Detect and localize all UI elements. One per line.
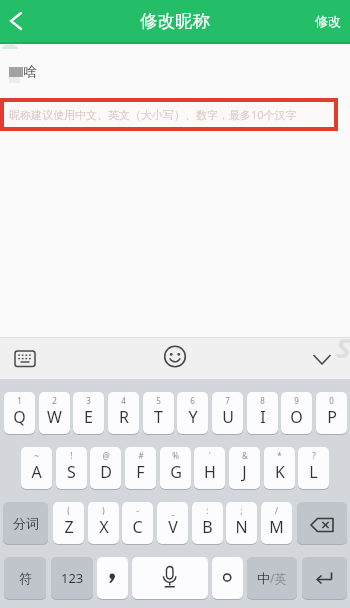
staticText: 分词 xyxy=(13,515,39,531)
staticText: % xyxy=(172,450,179,461)
staticText: P xyxy=(327,406,337,428)
staticText: J xyxy=(242,461,247,483)
staticText: W xyxy=(47,406,62,428)
staticText: 修改 xyxy=(315,13,341,29)
staticText: K xyxy=(275,461,285,483)
staticText: 4 xyxy=(121,395,126,406)
staticText: C xyxy=(132,516,143,538)
staticText: 昵称建议使用中文、英文（大小写）、数字，最多10个汉字 xyxy=(9,107,297,122)
button[interactable]: / xyxy=(261,502,292,544)
staticText: R xyxy=(119,406,129,428)
button[interactable]: _ xyxy=(157,502,188,544)
staticText: Y xyxy=(188,406,198,428)
button[interactable] xyxy=(306,346,338,372)
staticText: # xyxy=(138,450,144,461)
button[interactable]: - xyxy=(122,502,153,544)
button[interactable] xyxy=(2,5,36,37)
button[interactable]: 分词 xyxy=(3,502,48,544)
staticText: V xyxy=(168,516,178,538)
staticText: ; xyxy=(240,505,243,516)
button[interactable] xyxy=(132,557,208,599)
staticText: Z xyxy=(64,516,74,538)
staticText: A xyxy=(31,461,42,483)
staticText: X xyxy=(99,516,109,538)
button[interactable]: ) xyxy=(88,502,119,544)
button[interactable]: 1 xyxy=(4,392,35,434)
staticText: 5 xyxy=(156,395,161,406)
button[interactable]: 7 xyxy=(212,392,243,434)
button[interactable]: # xyxy=(125,447,156,489)
button[interactable]: & xyxy=(229,447,260,489)
button[interactable]: 0 xyxy=(316,392,347,434)
staticText: S xyxy=(67,461,76,483)
button[interactable]: 8 xyxy=(247,392,278,434)
staticText: B xyxy=(202,516,213,538)
staticText: 符 xyxy=(19,570,32,586)
staticText: U xyxy=(222,406,234,428)
staticText: M xyxy=(269,516,284,538)
staticText: * xyxy=(277,450,282,461)
staticText: Q xyxy=(13,406,26,428)
button[interactable]: 5 xyxy=(143,392,174,434)
staticText: 3 xyxy=(86,395,91,406)
button[interactable]: : xyxy=(192,502,223,544)
staticText: O xyxy=(290,406,303,428)
button[interactable]: 中/英 xyxy=(247,557,297,599)
staticText: _ xyxy=(171,505,175,516)
button[interactable] xyxy=(302,557,347,599)
staticText: / xyxy=(275,505,278,516)
button[interactable] xyxy=(8,344,44,372)
staticText: 6 xyxy=(190,395,195,406)
staticText: - xyxy=(136,505,139,516)
staticText: E xyxy=(84,406,93,428)
staticText: : xyxy=(206,505,209,516)
staticText: 8 xyxy=(260,395,265,406)
button[interactable]: ; xyxy=(226,502,257,544)
button[interactable]: ' xyxy=(194,447,225,489)
staticText: ~ xyxy=(34,450,39,461)
staticText: 修改昵称 xyxy=(115,10,235,32)
button[interactable]: ? xyxy=(298,447,329,489)
button[interactable]: 9 xyxy=(281,392,312,434)
button[interactable]: 6 xyxy=(177,392,208,434)
staticText: ( xyxy=(67,505,70,516)
staticText: 123 xyxy=(61,569,84,587)
staticText: 2 xyxy=(52,395,57,406)
button[interactable]: * xyxy=(264,447,295,489)
staticText: & xyxy=(242,450,248,461)
button[interactable]: 123 xyxy=(51,557,93,599)
button[interactable]: 修改 xyxy=(308,7,348,35)
staticText: ) xyxy=(102,505,105,516)
button[interactable]: @ xyxy=(90,447,121,489)
staticText: H xyxy=(204,461,216,483)
staticText: 7 xyxy=(225,395,230,406)
staticText: 啥 xyxy=(21,63,39,80)
staticText: ! xyxy=(70,450,73,461)
button[interactable]: 4 xyxy=(108,392,139,434)
button[interactable]: ! xyxy=(56,447,87,489)
staticText: 中/英 xyxy=(257,570,287,587)
button[interactable]: 3 xyxy=(73,392,104,434)
button[interactable] xyxy=(297,502,347,544)
button[interactable] xyxy=(97,557,128,599)
button[interactable]: 符 xyxy=(4,557,46,599)
staticText: 0 xyxy=(329,395,334,406)
staticText: L xyxy=(309,461,318,483)
staticText: G xyxy=(170,461,182,483)
staticText: F xyxy=(136,461,145,483)
staticText: I xyxy=(260,406,266,428)
button[interactable] xyxy=(160,342,190,372)
staticText: 1 xyxy=(17,395,22,406)
button[interactable]: ( xyxy=(53,502,84,544)
staticText: N xyxy=(235,516,248,538)
staticText: @ xyxy=(102,450,110,461)
button[interactable]: % xyxy=(160,447,191,489)
button[interactable] xyxy=(212,557,243,599)
button[interactable]: 2 xyxy=(39,392,70,434)
staticText: T xyxy=(154,406,163,428)
staticText: ? xyxy=(312,450,316,461)
staticText: D xyxy=(100,461,112,483)
staticText: S xyxy=(336,329,350,366)
button[interactable]: ~ xyxy=(21,447,52,489)
staticText: 9 xyxy=(294,395,299,406)
